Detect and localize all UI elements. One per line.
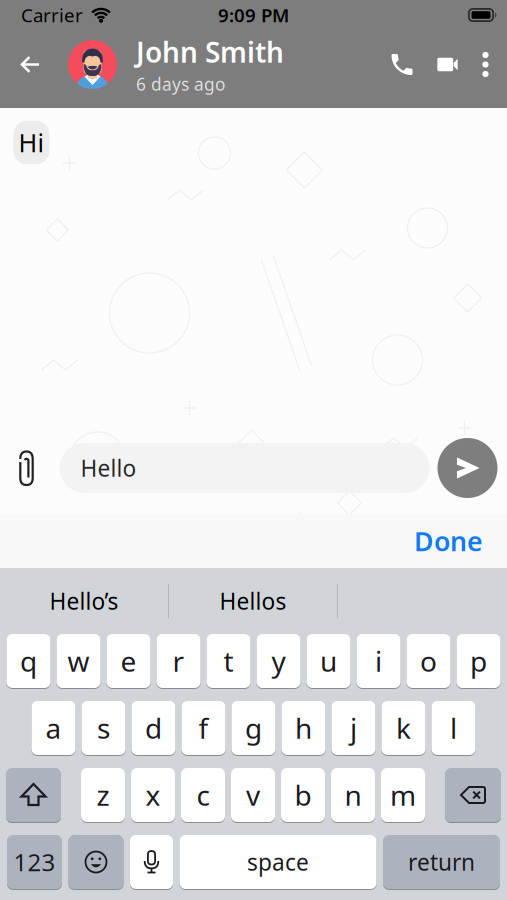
button[interactable]: l (431, 701, 475, 755)
button[interactable]: o (406, 634, 450, 688)
staticText: John Smith (136, 33, 284, 71)
staticText: n (344, 776, 361, 814)
button[interactable]: j (331, 701, 375, 755)
staticText: f (198, 709, 208, 747)
button[interactable]: k (381, 701, 425, 755)
staticText: m (390, 776, 416, 814)
button[interactable]: return (383, 835, 500, 889)
staticText: Hellos (219, 586, 286, 616)
staticText: c (196, 776, 209, 814)
button[interactable]: m (381, 768, 425, 822)
button[interactable]: Done (414, 523, 507, 559)
button[interactable]: Hellos (169, 568, 337, 634)
button[interactable]: n (331, 768, 375, 822)
staticText: y (271, 642, 285, 680)
staticText: i (375, 642, 382, 680)
button[interactable]: v (231, 768, 275, 822)
staticText: b (294, 776, 311, 814)
staticText: z (96, 776, 109, 814)
staticText: w (67, 642, 89, 680)
staticText: Hello’s (49, 586, 118, 616)
staticText: a (45, 709, 61, 747)
staticText: q (20, 642, 37, 680)
button[interactable]: a (31, 701, 75, 755)
button[interactable]: q (6, 634, 50, 688)
button[interactable]: e (106, 634, 150, 688)
button[interactable]: b (281, 768, 325, 822)
staticText: u (320, 642, 337, 680)
button[interactable]: i (356, 634, 400, 688)
button[interactable]: Voice call (388, 50, 416, 78)
button[interactable]: s (81, 701, 125, 755)
staticText: l (450, 709, 457, 747)
button[interactable]: Delete (445, 768, 501, 822)
button[interactable]: John Smith (68, 33, 284, 96)
staticText: v (246, 776, 260, 814)
button[interactable]: Emoji (68, 835, 123, 889)
staticText: 9:09 PM (218, 3, 289, 27)
staticText: d (145, 709, 162, 747)
staticText: t (223, 642, 233, 680)
button[interactable]: Dictate (130, 835, 173, 889)
staticText: p (470, 642, 487, 680)
staticText: s (97, 709, 110, 747)
button[interactable]: Send (437, 438, 507, 498)
button[interactable]: More options (461, 51, 507, 77)
button[interactable]: h (281, 701, 325, 755)
button[interactable]: Attach file (0, 450, 35, 486)
staticText: o (420, 642, 437, 680)
staticText: Hello (80, 453, 136, 483)
button[interactable]: u (306, 634, 350, 688)
button[interactable]: z (81, 768, 125, 822)
button[interactable]: r (156, 634, 200, 688)
button[interactable]: Video call (416, 52, 461, 76)
staticText: r (172, 642, 184, 680)
button[interactable]: y (256, 634, 300, 688)
button[interactable]: t (206, 634, 250, 688)
button[interactable]: c (181, 768, 225, 822)
staticText: Carrier (21, 3, 83, 27)
button[interactable]: Back (0, 50, 68, 78)
staticText: Done (414, 523, 483, 559)
staticText: g (245, 709, 262, 747)
button[interactable]: Numbers (7, 835, 62, 889)
staticText: 6 days ago (136, 73, 225, 96)
button[interactable]: Hello’s (0, 568, 168, 634)
staticText: j (350, 709, 357, 747)
button[interactable]: Hello (35, 443, 429, 493)
button[interactable]: d (131, 701, 175, 755)
staticText: 123 (13, 846, 55, 878)
staticText: space (247, 847, 309, 877)
staticText: x (145, 776, 160, 814)
button[interactable]: p (456, 634, 500, 688)
button[interactable]: space (179, 835, 376, 889)
button[interactable]: w (56, 634, 100, 688)
button[interactable]: Shift (6, 768, 61, 822)
button[interactable]: g (231, 701, 275, 755)
staticText: e (120, 642, 136, 680)
button[interactable]: f (181, 701, 225, 755)
staticText: k (396, 709, 411, 747)
staticText: Hi (18, 126, 44, 159)
staticText: h (295, 709, 312, 747)
staticText: return (408, 847, 475, 877)
button[interactable]: x (131, 768, 175, 822)
